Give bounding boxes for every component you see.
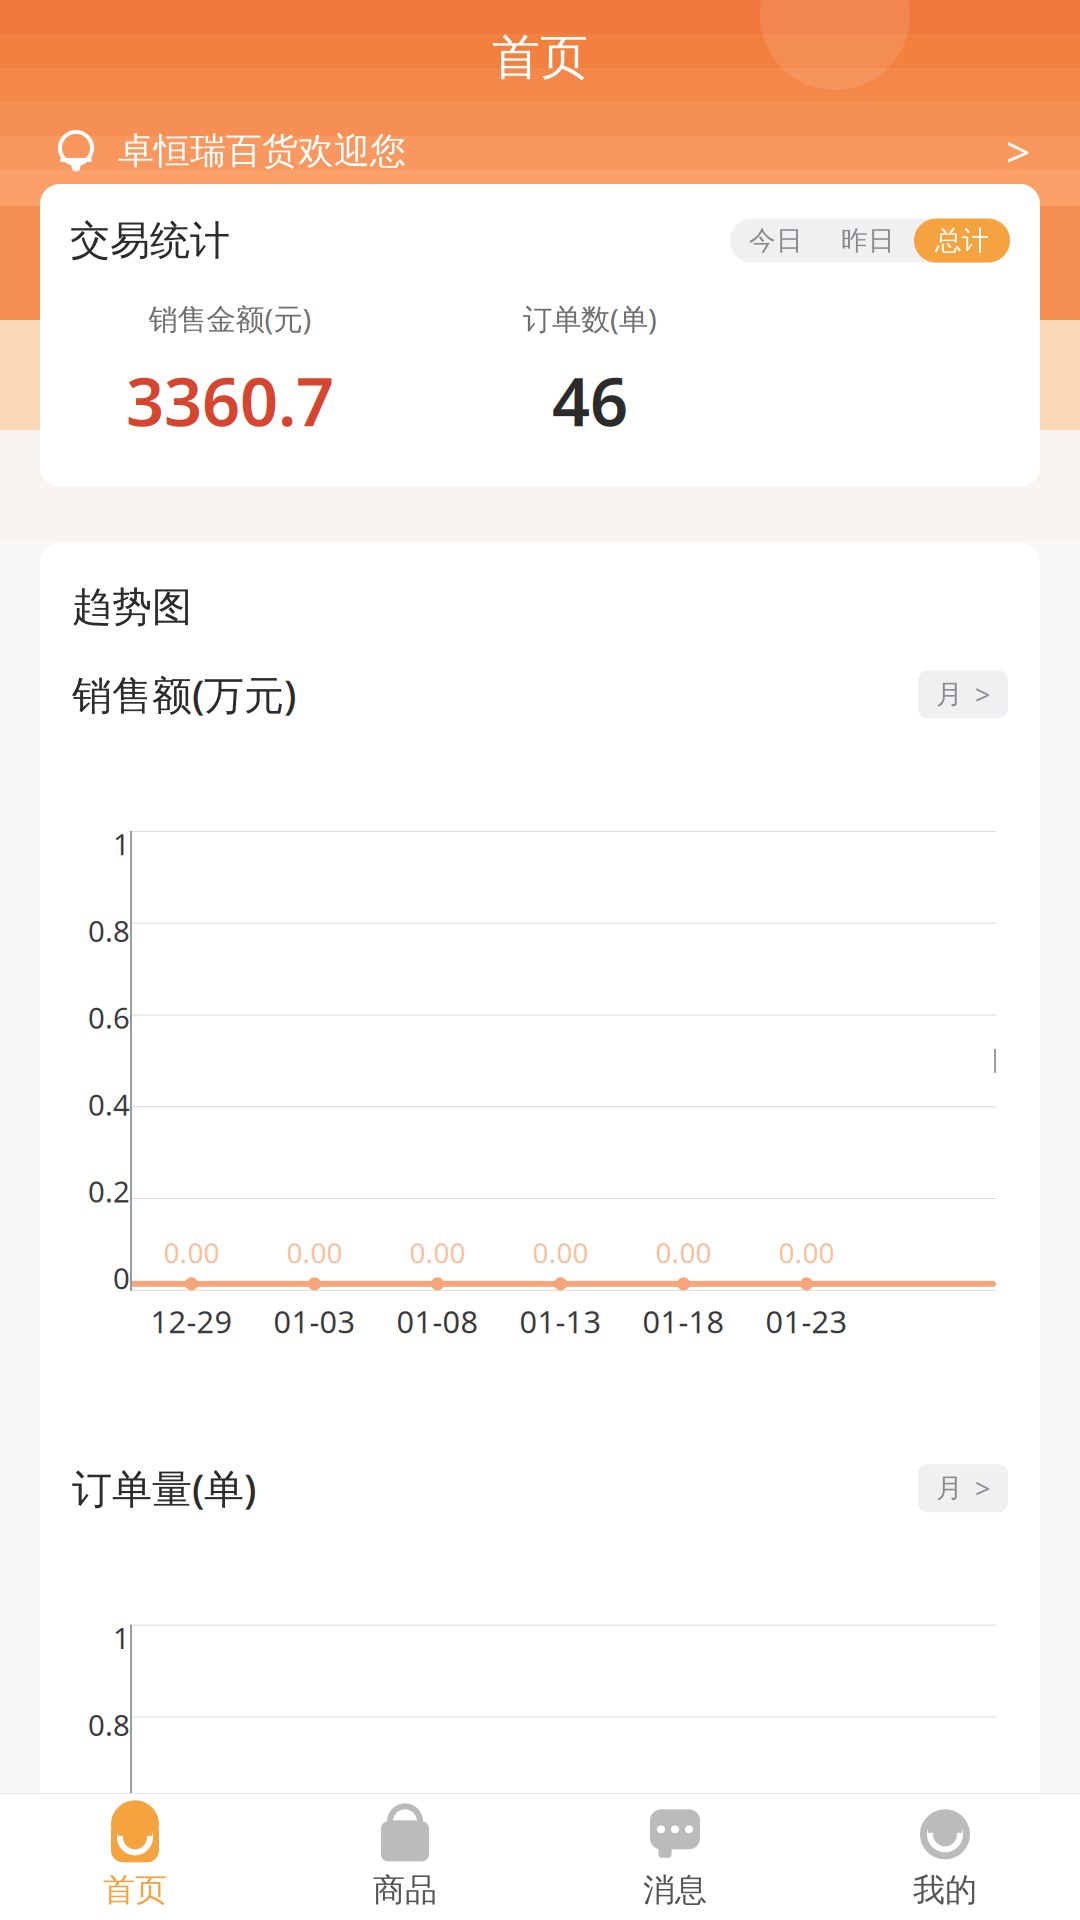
staticText: 1 (113, 1618, 130, 1657)
staticText: 0 (113, 1258, 130, 1297)
staticText: 交易统计 (70, 216, 230, 265)
button[interactable]: 月 (918, 670, 1008, 718)
staticText: 商品 (373, 1870, 437, 1910)
staticText: 订单数(单) (523, 299, 657, 338)
staticText: > (975, 1470, 990, 1506)
staticText: 月 (936, 1472, 963, 1505)
staticText: 01-13 (519, 1301, 601, 1342)
staticText: 0.8 (88, 1705, 130, 1744)
staticText: 首页 (103, 1870, 167, 1910)
staticText: 销售金额(元) (148, 299, 311, 338)
staticText: 01-08 (396, 1301, 478, 1342)
staticText: 0.00 (286, 1234, 342, 1271)
staticText: 0.4 (88, 1085, 130, 1124)
button[interactable]: 总计 (914, 219, 1010, 263)
staticText: > (975, 677, 990, 712)
staticText: 0.8 (88, 911, 130, 950)
staticText: 1 (113, 824, 130, 863)
staticText: 12-29 (150, 1301, 232, 1342)
staticText: 首页 (492, 28, 588, 87)
staticText: 01-03 (273, 1301, 355, 1342)
staticText: 0.00 (409, 1234, 465, 1271)
button[interactable]: 消息 (540, 1794, 810, 1920)
staticText: 0.4 (88, 1879, 130, 1918)
staticText: 0.00 (655, 1234, 711, 1271)
staticText: 3360.7 (126, 356, 334, 445)
staticText: 月 (936, 678, 963, 711)
staticText: 我的 (913, 1870, 977, 1910)
staticText: 销售额(万元) (72, 668, 296, 721)
staticText: 01-18 (642, 1301, 724, 1342)
staticText: 01-23 (765, 1301, 847, 1342)
staticText: 今日 (749, 224, 803, 257)
staticText: 卓恒瑞百货欢迎您 (118, 129, 406, 173)
staticText: 趋势图 (72, 583, 192, 632)
staticText: 0.6 (88, 998, 130, 1037)
staticText: 订单量(单) (72, 1462, 256, 1515)
staticText: 0.00 (778, 1234, 834, 1271)
button[interactable]: 商品 (270, 1794, 540, 1920)
button[interactable]: 月 (918, 1464, 1008, 1512)
button[interactable]: 我的 (810, 1794, 1080, 1920)
staticText: 消息 (643, 1870, 707, 1910)
staticText: 昨日 (841, 224, 895, 257)
button[interactable]: 卓恒瑞百货欢迎您 (0, 109, 1080, 193)
staticText: 0.00 (532, 1234, 588, 1271)
staticText: 总计 (935, 224, 989, 257)
staticText: 0.2 (88, 1172, 130, 1211)
staticText: > (1006, 123, 1030, 179)
button[interactable]: 昨日 (822, 219, 914, 263)
button[interactable]: 首页 (0, 1794, 270, 1920)
staticText: 0.00 (163, 1234, 219, 1271)
staticText: 46 (552, 356, 628, 445)
staticText: 0.6 (88, 1792, 130, 1831)
button[interactable]: 今日 (730, 219, 822, 263)
